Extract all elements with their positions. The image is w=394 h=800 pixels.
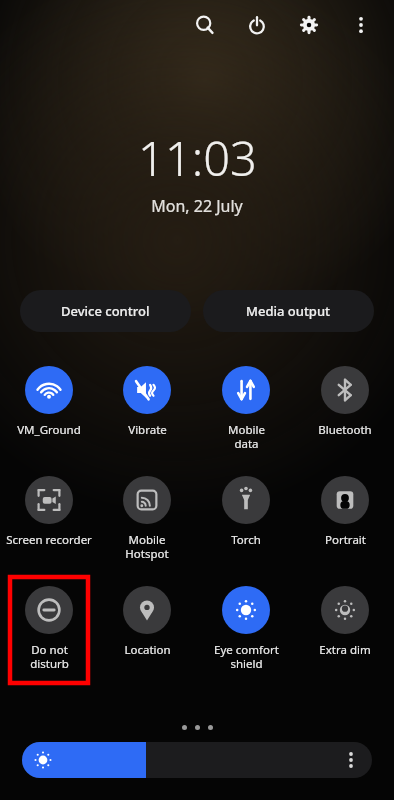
- button[interactable]: Portrait: [302, 467, 388, 548]
- button[interactable]: Vibrate: [104, 357, 190, 438]
- button[interactable]: Settings: [294, 10, 324, 40]
- staticText: Portrait: [325, 532, 366, 548]
- staticText: Location: [124, 642, 171, 658]
- staticText: VM_Ground: [17, 422, 81, 438]
- staticText: Media output: [246, 302, 331, 320]
- staticText: Mon, 22 July: [151, 195, 243, 217]
- button[interactable]: Media output: [203, 290, 374, 332]
- button[interactable]: More options: [346, 10, 376, 40]
- staticText: Bluetooth: [318, 422, 372, 438]
- button[interactable]: Brightness: [22, 742, 372, 778]
- staticText: Extra dim: [319, 642, 371, 658]
- button[interactable]: VM_Ground: [6, 357, 92, 438]
- button[interactable]: Eye comfort shield: [203, 577, 289, 671]
- button[interactable]: Mobile Hotspot: [104, 467, 190, 561]
- staticText: Mobile Hotspot: [125, 532, 169, 561]
- staticText: Mobile data: [228, 422, 265, 451]
- button[interactable]: Mobile data: [203, 357, 289, 451]
- staticText: Device control: [61, 302, 150, 320]
- staticText: 11:03: [138, 126, 257, 190]
- button[interactable]: Screen recorder: [6, 467, 92, 548]
- staticText: Eye comfort shield: [214, 642, 279, 671]
- staticText: Screen recorder: [6, 532, 92, 548]
- button[interactable]: Do not disturb: [6, 577, 92, 671]
- staticText: Do not disturb: [30, 642, 69, 671]
- button[interactable]: Device control: [20, 290, 191, 332]
- staticText: Torch: [231, 532, 261, 548]
- button[interactable]: Search: [190, 10, 220, 40]
- button[interactable]: Bluetooth: [302, 357, 388, 438]
- button[interactable]: Location: [104, 577, 190, 658]
- button[interactable]: Extra dim: [302, 577, 388, 658]
- staticText: Vibrate: [128, 422, 167, 438]
- button[interactable]: Torch: [203, 467, 289, 548]
- button[interactable]: Power: [242, 10, 272, 40]
